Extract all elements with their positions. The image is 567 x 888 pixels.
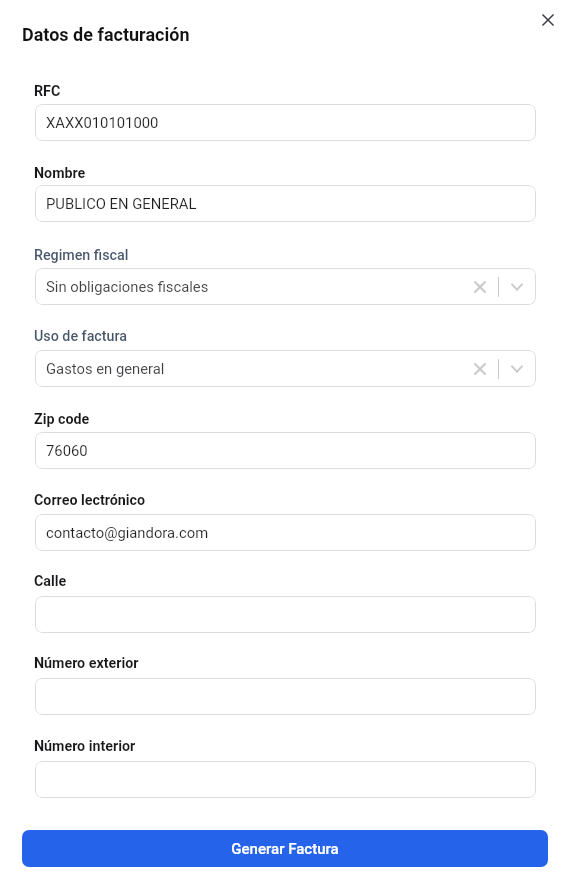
button[interactable]: 76060	[35, 432, 536, 469]
staticText: RFC	[34, 83, 61, 100]
staticText: contacto@giandora.com	[46, 524, 209, 541]
button[interactable]: contacto@giandora.com	[35, 514, 536, 551]
staticText: Zip code	[34, 411, 90, 428]
button[interactable]: Close	[534, 6, 562, 34]
staticText: Regimen fiscal	[34, 247, 129, 264]
staticText: Calle	[34, 573, 67, 590]
staticText: Uso de factura	[34, 328, 128, 345]
button[interactable]	[35, 596, 536, 633]
button[interactable]: XAXX010101000	[35, 104, 536, 141]
staticText: Gastos en general	[46, 360, 165, 377]
staticText: Número interior	[34, 738, 136, 755]
staticText: XAXX010101000	[46, 114, 159, 131]
staticText: PUBLICO EN GENERAL	[46, 195, 197, 212]
staticText: Generar Factura	[231, 840, 339, 858]
button[interactable]	[35, 761, 536, 798]
button[interactable]: Gastos en general	[35, 350, 536, 387]
button[interactable]: Sin obligaciones fiscales	[35, 268, 536, 305]
button[interactable]: Clear Uso de factura	[470, 359, 490, 379]
staticText: Datos de facturación	[22, 24, 190, 45]
button[interactable]: Open Uso de factura options	[507, 359, 527, 379]
staticText: Nombre	[34, 165, 86, 182]
button[interactable]: Clear Regimen fiscal	[470, 277, 490, 297]
staticText: Correo lectrónico	[34, 492, 145, 509]
button[interactable]	[35, 678, 536, 715]
button[interactable]: PUBLICO EN GENERAL	[35, 185, 536, 222]
button[interactable]: Open Regimen fiscal options	[507, 277, 527, 297]
staticText: Sin obligaciones fiscales	[46, 278, 209, 295]
staticText: 76060	[46, 442, 88, 459]
staticText: Número exterior	[34, 655, 139, 672]
button[interactable]: Generar Factura	[22, 830, 548, 867]
